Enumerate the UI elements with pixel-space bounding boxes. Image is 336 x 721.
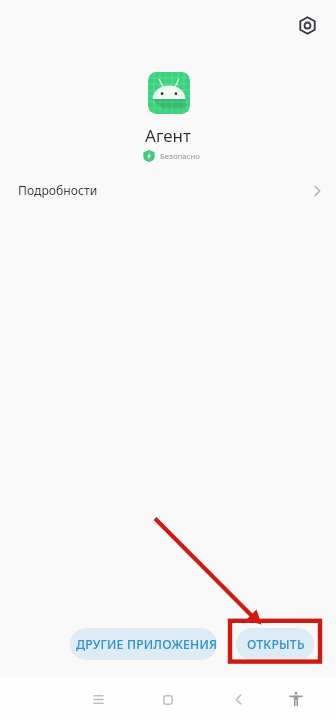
staticText: Подробности <box>18 182 98 199</box>
button[interactable]: ОТКРЫТЬ <box>236 628 314 660</box>
button[interactable]: Settings <box>290 8 325 43</box>
staticText: Агент <box>0 124 336 147</box>
button[interactable]: Back <box>218 679 258 719</box>
button[interactable]: Home <box>148 680 188 720</box>
button[interactable]: ДРУГИЕ ПРИЛОЖЕНИЯ <box>70 628 217 660</box>
staticText: Безопасно <box>160 151 200 162</box>
button[interactable]: Accessibility <box>276 679 316 719</box>
button[interactable]: Recent apps <box>78 679 118 719</box>
staticText: ДРУГИЕ ПРИЛОЖЕНИЯ <box>76 636 217 653</box>
button[interactable]: Подробности <box>0 172 336 208</box>
staticText: ОТКРЫТЬ <box>247 636 305 653</box>
